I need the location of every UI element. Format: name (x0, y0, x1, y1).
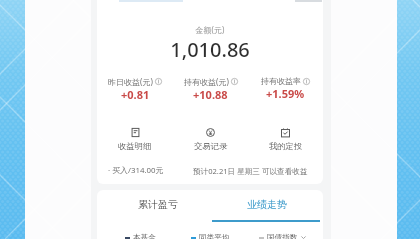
staticText: 预计02.21日 星期三 可以查看收益 (193, 166, 308, 176)
button[interactable]: 我的定投 (248, 128, 323, 151)
staticText: 1,010.86 (97, 36, 323, 63)
staticText: 持有收益率 (261, 76, 301, 86)
staticText: 我的定投 (269, 141, 303, 151)
staticText: +0.81 (121, 87, 150, 102)
staticText: 持有收益(元) (184, 76, 229, 87)
staticText: 本基金 (133, 233, 156, 239)
staticText: +1.59% (266, 86, 305, 101)
staticText: 昨日收益(元) (108, 76, 153, 87)
staticText: · 买入/314.00元 (108, 165, 164, 176)
staticText: 累计盈亏 (138, 198, 178, 211)
staticText: 金额(元) (97, 24, 323, 35)
button[interactable]: 收益明细 (97, 128, 173, 151)
staticText: 同类平均 (199, 233, 230, 239)
button[interactable]: 交易记录 (173, 128, 248, 151)
button[interactable]: 业绩走势 (210, 198, 323, 222)
staticText: 收益明细 (118, 141, 152, 151)
staticText: 交易记录 (194, 141, 228, 151)
staticText: 国债指数 (267, 233, 298, 239)
staticText: +10.88 (193, 87, 228, 102)
button[interactable]: 累计盈亏 (97, 198, 210, 222)
staticText: 业绩走势 (247, 198, 287, 211)
